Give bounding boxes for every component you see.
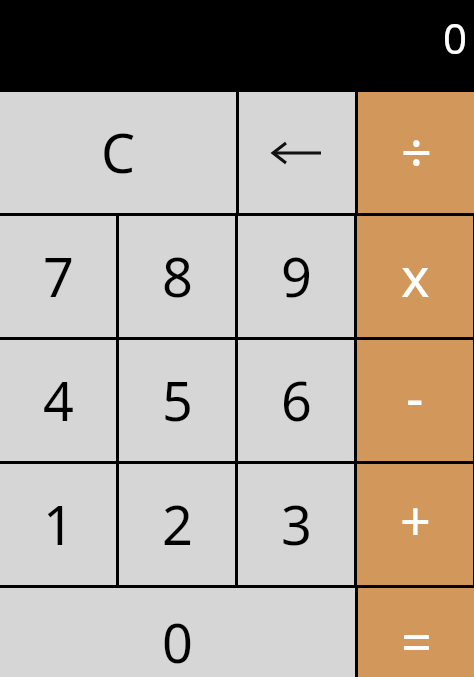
staticText: 2: [162, 487, 193, 561]
staticText: 8: [162, 239, 193, 313]
button[interactable]: 6: [238, 340, 354, 461]
staticText: 9: [281, 239, 312, 313]
button[interactable]: 3: [238, 464, 354, 585]
button[interactable]: -: [357, 340, 473, 461]
button[interactable]: 7: [0, 216, 116, 337]
staticText: x: [401, 239, 430, 313]
staticText: -: [406, 360, 424, 434]
button[interactable]: 4: [0, 340, 116, 461]
staticText: 4: [43, 363, 74, 437]
button[interactable]: [239, 92, 355, 213]
button[interactable]: ÷: [358, 92, 474, 213]
staticText: 0: [162, 605, 193, 677]
staticText: 6: [281, 363, 312, 437]
staticText: 0: [443, 9, 468, 66]
staticText: 7: [43, 239, 74, 313]
staticText: +: [400, 483, 431, 557]
staticText: 1: [43, 487, 74, 561]
button[interactable]: 5: [119, 340, 235, 461]
button[interactable]: 0: [0, 588, 355, 677]
staticText: C: [101, 115, 136, 189]
staticText: =: [401, 604, 432, 677]
staticText: 3: [281, 487, 312, 561]
button[interactable]: 8: [119, 216, 235, 337]
staticText: 5: [162, 363, 193, 437]
button[interactable]: x: [357, 216, 473, 337]
button[interactable]: 2: [119, 464, 235, 585]
staticText: ÷: [401, 115, 432, 189]
button[interactable]: =: [358, 588, 474, 677]
button[interactable]: C: [0, 92, 236, 213]
button[interactable]: 9: [238, 216, 354, 337]
button[interactable]: +: [357, 464, 473, 585]
button[interactable]: 1: [0, 464, 116, 585]
